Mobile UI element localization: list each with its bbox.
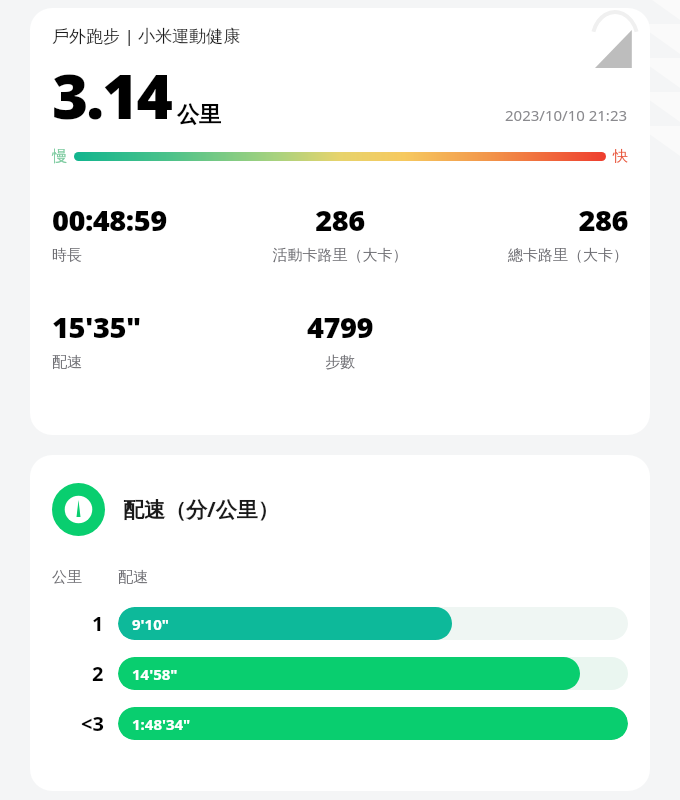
staticText: 9'10" <box>132 614 169 634</box>
staticText: 15'35" <box>52 307 244 346</box>
button[interactable]: <3 <box>52 707 628 740</box>
staticText: 活動卡路里（大卡） <box>244 246 436 265</box>
button[interactable]: 2 <box>52 657 628 690</box>
staticText: 公里 <box>52 568 82 587</box>
staticText: 4799 <box>244 307 436 346</box>
button[interactable]: 1 <box>52 607 628 640</box>
staticText: 配速 <box>52 353 244 372</box>
staticText: 3.14 <box>52 53 171 137</box>
staticText: 配速 <box>118 568 148 587</box>
staticText: 00:48:59 <box>52 200 244 239</box>
staticText: 14'58" <box>132 664 178 684</box>
staticText: 286 <box>436 200 628 239</box>
staticText: 戶外跑步 | 小米運動健康 <box>52 24 241 47</box>
staticText: 總卡路里（大卡） <box>436 246 628 265</box>
staticText: 286 <box>244 200 436 239</box>
staticText: 時長 <box>52 246 244 265</box>
staticText: 公里 <box>177 101 221 129</box>
staticText: 2 <box>92 660 104 687</box>
staticText: 快 <box>613 147 628 166</box>
staticText: 2023/10/10 21:23 <box>505 105 628 125</box>
other: Pace <box>52 483 105 536</box>
staticText: 慢 <box>52 147 67 166</box>
staticText: 1:48'34" <box>132 714 191 734</box>
staticText: 配速（分/公里） <box>123 495 279 524</box>
button[interactable]: Pace <box>52 483 628 536</box>
staticText: <3 <box>81 710 104 737</box>
staticText: 1 <box>92 610 104 637</box>
staticText: 步數 <box>244 353 436 372</box>
